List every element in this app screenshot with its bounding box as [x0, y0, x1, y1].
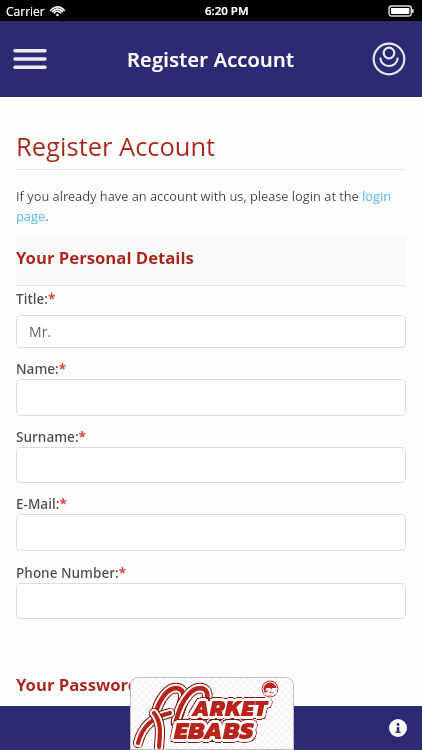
staticText: ARKET: [190, 693, 266, 727]
staticText: Register Account: [127, 46, 295, 73]
staticText: Register Account: [16, 129, 216, 164]
button[interactable]: [16, 583, 406, 619]
staticText: ARKET: [195, 694, 271, 728]
staticText: ARKET: [188, 691, 264, 725]
staticText: EBABS: [177, 714, 257, 750]
staticText: EBABS: [177, 711, 257, 748]
staticText: ARKET: [192, 691, 268, 725]
staticText: Mr.: [29, 322, 52, 341]
staticText: ARKET: [194, 689, 270, 723]
staticText: 25: [265, 683, 277, 699]
staticText: Title:*: [16, 290, 56, 308]
staticText: EBABS: [177, 708, 257, 745]
staticText: EBABS: [176, 713, 256, 750]
staticText: Name:*: [16, 360, 67, 378]
staticText: ARKET: [192, 687, 268, 721]
button[interactable]: Market Kebabs: [130, 677, 294, 750]
staticText: EBABS: [174, 714, 254, 750]
staticText: Phone Number:*: [16, 564, 127, 582]
staticText: ARKET: [189, 688, 265, 722]
staticText: E-Mail:*: [16, 495, 67, 513]
staticText: EBABS: [174, 707, 254, 744]
staticText: ARKET: [189, 691, 265, 725]
button[interactable]: Information: [384, 714, 412, 742]
staticText: EBABS: [172, 713, 252, 750]
staticText: If you already have an account with us, …: [16, 187, 406, 224]
staticText: ARKET: [195, 688, 271, 722]
staticText: Carrier: [6, 3, 45, 19]
staticText: Surname:*: [16, 428, 86, 446]
staticText: 6:20 PM: [205, 3, 249, 19]
staticText: EBABS: [171, 714, 251, 750]
staticText: EBABS: [171, 711, 251, 748]
staticText: ARKET: [190, 689, 266, 723]
button[interactable]: [16, 514, 406, 551]
staticText: EBABS: [170, 711, 250, 748]
staticText: ARKET: [192, 694, 268, 728]
staticText: EBABS: [172, 709, 252, 746]
staticText: EBABS: [178, 711, 258, 748]
staticText: Your Password: [16, 673, 139, 696]
staticText: ARKET: [195, 691, 271, 725]
staticText: ARKET: [192, 695, 268, 729]
staticText: ARKET: [196, 691, 272, 725]
button[interactable]: Mr.: [16, 315, 406, 348]
button[interactable]: Account: [367, 37, 411, 81]
staticText: EBABS: [171, 708, 251, 745]
staticText: EBABS: [174, 708, 254, 745]
staticText: EBABS: [174, 711, 254, 748]
staticText: ARKET: [192, 688, 268, 722]
staticText: EBABS: [176, 709, 256, 746]
staticText: Your Personal Details: [16, 246, 194, 269]
button[interactable]: [16, 379, 406, 416]
staticText: EBABS: [174, 715, 254, 750]
staticText: ARKET: [189, 694, 265, 728]
staticText: ARKET: [194, 693, 270, 727]
button[interactable]: [16, 447, 406, 483]
button[interactable]: Open navigation menu: [6, 35, 54, 83]
